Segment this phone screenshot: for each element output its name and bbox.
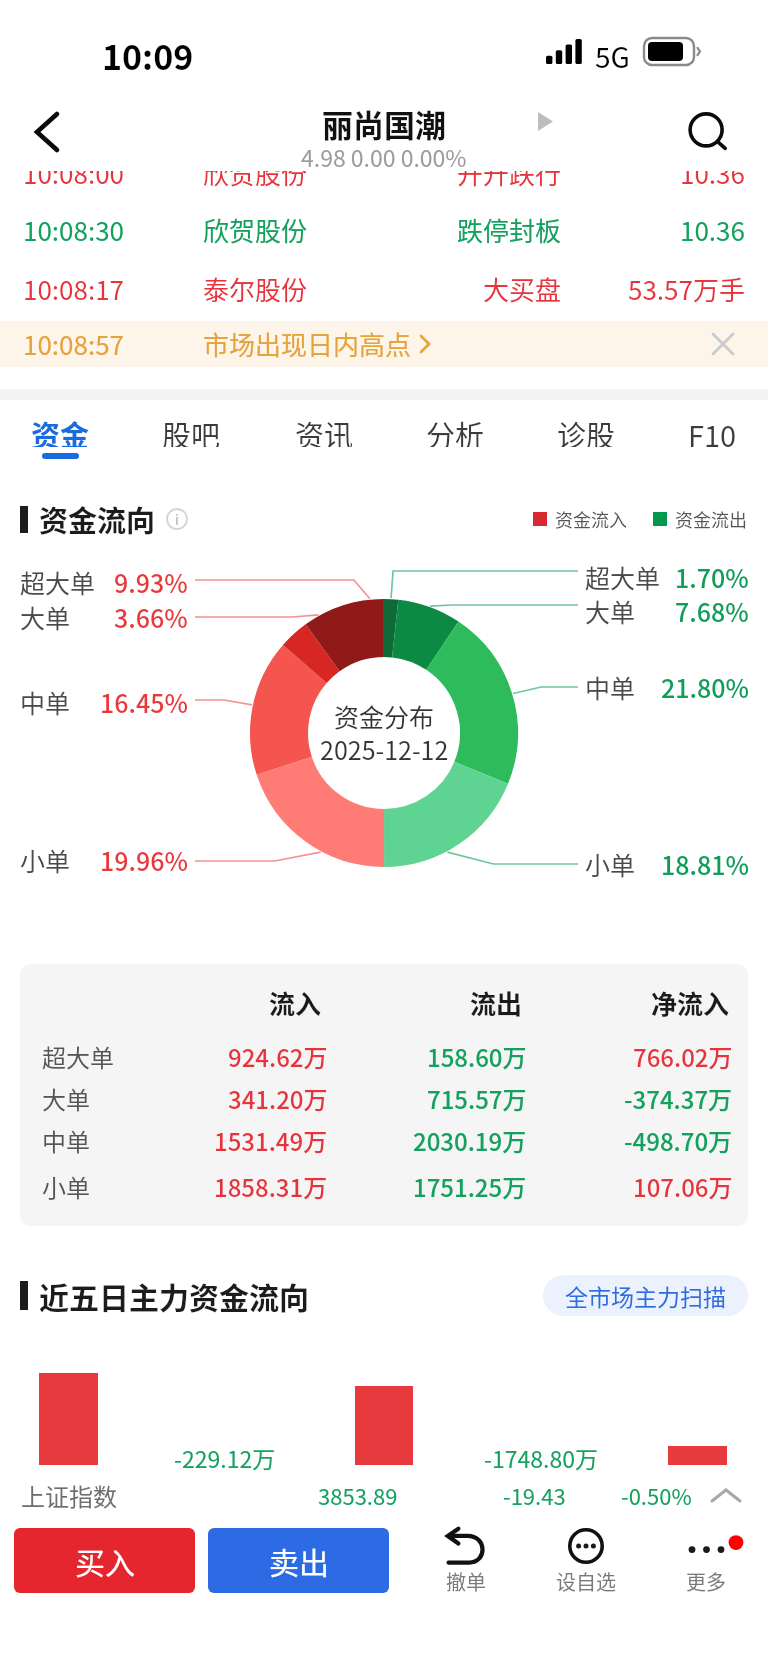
staticText: -498.70万 xyxy=(624,1123,733,1158)
staticText: 资金分布 xyxy=(334,698,435,732)
button[interactable]: 股吧 xyxy=(133,400,249,472)
staticText: 10.36 xyxy=(680,154,745,192)
button[interactable]: Collapse xyxy=(700,1472,752,1518)
staticText: -229.12万 xyxy=(174,1441,276,1473)
staticText: 资金流出 xyxy=(675,506,747,532)
staticText: 大单 xyxy=(42,1081,90,1116)
staticText: 大单 xyxy=(585,593,636,629)
button[interactable]: 更多 xyxy=(651,1518,761,1610)
staticText: 2030.19万 xyxy=(413,1123,527,1158)
staticText: 资讯 xyxy=(295,413,354,447)
staticText: -374.37万 xyxy=(624,1081,733,1116)
staticText: 近五日主力资金流向 xyxy=(39,1274,309,1317)
staticText: 10.36 xyxy=(680,211,745,249)
staticText: 9.93% xyxy=(114,564,188,600)
button[interactable]: 10:08:00 xyxy=(0,150,768,196)
staticText: -0.50% xyxy=(621,1479,692,1511)
button[interactable]: 资金 xyxy=(2,400,118,472)
staticText: 766.02万 xyxy=(633,1039,733,1074)
staticText: 3.66% xyxy=(114,599,188,635)
staticText: 7.68% xyxy=(675,593,749,629)
staticText: 16.45% xyxy=(100,684,188,720)
staticText: 资金流向 xyxy=(39,498,156,540)
staticText: 中单 xyxy=(20,684,71,720)
staticText: 分析 xyxy=(426,413,485,447)
staticText: 欣贺股份 xyxy=(203,211,308,249)
staticText: 买入 xyxy=(75,1539,135,1582)
button[interactable]: Search xyxy=(664,92,754,171)
staticText: 中单 xyxy=(42,1123,90,1158)
button[interactable]: 诊股 xyxy=(528,400,644,472)
staticText: 流入 xyxy=(269,984,322,1022)
button[interactable]: 卖出 xyxy=(208,1528,389,1593)
staticText: 10:08:17 xyxy=(23,270,125,308)
staticText: 超大单 xyxy=(20,564,96,600)
staticText: 欣贺股份 xyxy=(203,154,308,192)
staticText: 3853.89 xyxy=(318,1479,398,1511)
staticText: 53.57万手 xyxy=(628,270,745,308)
staticText: 全市场主力扫描 xyxy=(565,1279,726,1312)
staticText: 158.60万 xyxy=(427,1039,527,1074)
staticText: -1748.80万 xyxy=(484,1441,598,1473)
staticText: 丽尚国潮 xyxy=(322,101,446,143)
staticText: 小单 xyxy=(20,842,71,878)
staticText: 18.81% xyxy=(661,846,749,882)
staticText: 股吧 xyxy=(162,413,221,447)
staticText: 超大单 xyxy=(585,559,661,595)
staticText: 设自选 xyxy=(556,1567,616,1595)
button[interactable]: 撤单 xyxy=(411,1518,521,1610)
staticText: 107.06万 xyxy=(633,1169,733,1204)
staticText: 4.98 0.00 0.00% xyxy=(301,140,467,173)
staticText: 10:09 xyxy=(102,31,194,71)
button[interactable]: Close xyxy=(703,324,743,364)
staticText: 小单 xyxy=(585,846,636,882)
staticText: 10:08:30 xyxy=(23,211,125,249)
staticText: 跌停封板 xyxy=(457,211,562,249)
staticText: 上证指数 xyxy=(21,1478,117,1513)
button[interactable]: 10:08:57 xyxy=(0,321,768,367)
staticText: i xyxy=(175,509,179,529)
button[interactable]: 10:08:17 xyxy=(0,266,768,312)
staticText: 市场出现日内高点 xyxy=(203,325,412,363)
staticText: 小单 xyxy=(42,1169,90,1204)
staticText: 资金流入 xyxy=(555,506,627,532)
button[interactable]: F10 xyxy=(654,400,768,472)
staticText: 19.96% xyxy=(100,842,188,878)
staticText: 流出 xyxy=(470,984,523,1022)
staticText: 1.70% xyxy=(675,559,749,595)
staticText: 21.80% xyxy=(661,669,749,705)
staticText: 诊股 xyxy=(557,413,616,447)
button[interactable]: 设自选 xyxy=(531,1518,641,1610)
button[interactable]: 上证指数 xyxy=(0,1472,768,1518)
button[interactable]: 全市场主力扫描 xyxy=(543,1275,748,1316)
staticText: 超大单 xyxy=(42,1039,114,1074)
staticText: 卖出 xyxy=(269,1539,329,1582)
staticText: 10:08:00 xyxy=(23,154,125,192)
staticText: 1858.31万 xyxy=(214,1169,328,1204)
button[interactable]: Back xyxy=(10,92,100,171)
staticText: 341.20万 xyxy=(228,1081,328,1116)
staticText: 5G xyxy=(595,36,630,70)
button[interactable]: 分析 xyxy=(397,400,513,472)
staticText: 中单 xyxy=(585,669,636,705)
button[interactable]: 资讯 xyxy=(266,400,382,472)
button[interactable]: Info xyxy=(165,507,189,531)
staticText: 大买盘 xyxy=(483,270,562,308)
staticText: 大单 xyxy=(20,599,71,635)
staticText: -19.43 xyxy=(503,1479,566,1511)
staticText: F10 xyxy=(688,413,737,447)
staticText: 715.57万 xyxy=(427,1081,527,1116)
button[interactable]: 买入 xyxy=(14,1528,195,1593)
staticText: 2025-12-12 xyxy=(320,731,449,765)
staticText: 1751.25万 xyxy=(413,1169,527,1204)
staticText: 净流入 xyxy=(651,984,730,1022)
staticText: 资金 xyxy=(31,413,90,447)
staticText: 泰尔股份 xyxy=(203,270,308,308)
staticText: 10:08:57 xyxy=(23,325,125,363)
staticText: 撤单 xyxy=(446,1567,486,1595)
staticText: 1531.49万 xyxy=(214,1123,328,1158)
button[interactable]: 10:08:30 xyxy=(0,207,768,253)
staticText: 开升跌行 xyxy=(457,154,562,192)
staticText: 更多 xyxy=(686,1567,726,1595)
staticText: 924.62万 xyxy=(228,1039,328,1074)
